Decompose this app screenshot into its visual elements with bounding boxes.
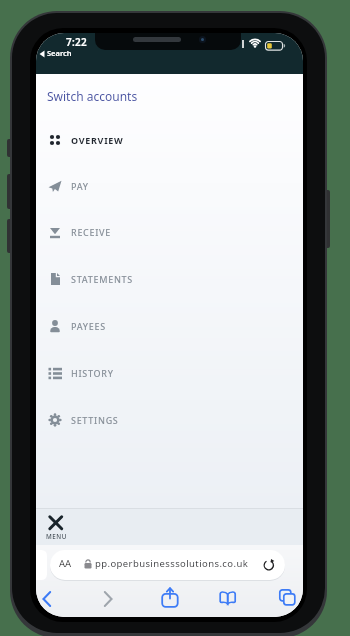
staticText: PAYEES xyxy=(71,320,106,332)
staticText: Switch accounts xyxy=(47,88,138,104)
button[interactable]: OVERVIEW xyxy=(46,130,226,150)
button[interactable]: PAY xyxy=(46,176,226,196)
button[interactable] xyxy=(38,589,56,609)
button[interactable] xyxy=(277,587,299,609)
button[interactable] xyxy=(159,586,181,610)
staticText: 7:22 xyxy=(66,35,88,49)
staticText: STATEMENTS xyxy=(71,273,133,285)
staticText: AA xyxy=(59,557,72,570)
button[interactable]: STATEMENTS xyxy=(46,269,226,289)
staticText: pp.operbusinesssolutions.co.uk xyxy=(95,557,249,570)
button[interactable]: PAYEES xyxy=(46,316,226,336)
button[interactable]: SETTINGS xyxy=(46,410,226,430)
staticText: MENU xyxy=(46,532,67,541)
button[interactable] xyxy=(50,550,285,580)
staticText: Search xyxy=(47,48,72,58)
staticText: RECEIVE xyxy=(71,226,112,238)
button[interactable]: MENU xyxy=(42,511,72,541)
button[interactable] xyxy=(217,588,239,608)
button[interactable]: RECEIVE xyxy=(46,222,226,242)
staticText: SETTINGS xyxy=(71,414,119,426)
button[interactable]: HISTORY xyxy=(46,363,226,383)
staticText: OVERVIEW xyxy=(71,134,124,146)
staticText: HISTORY xyxy=(71,367,114,379)
staticText: PAY xyxy=(71,180,89,192)
button[interactable] xyxy=(99,589,117,609)
